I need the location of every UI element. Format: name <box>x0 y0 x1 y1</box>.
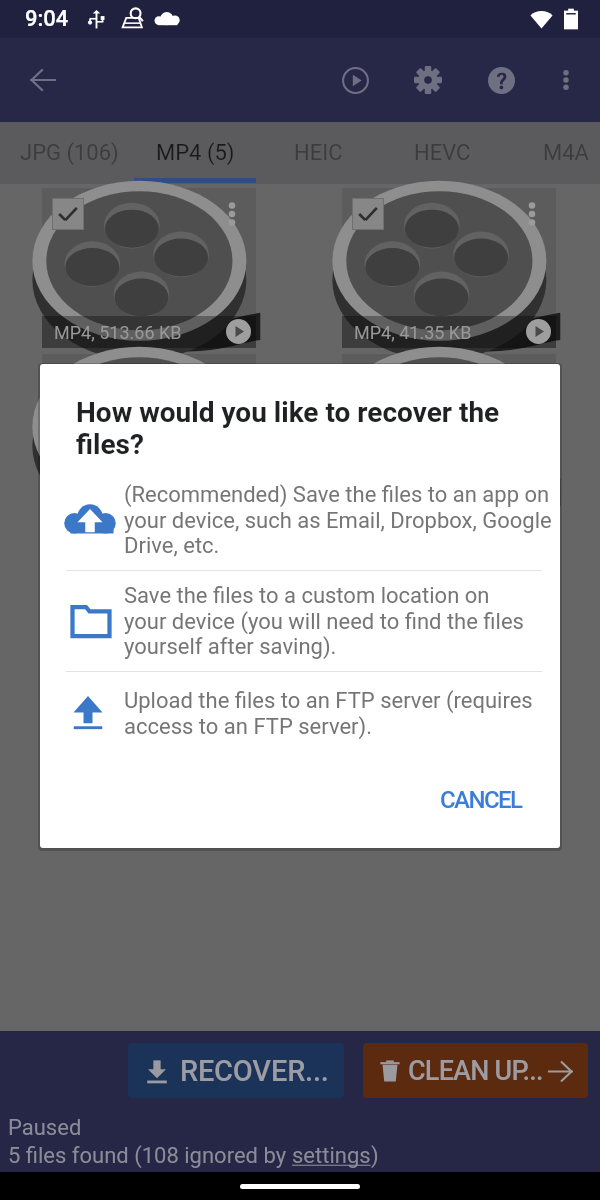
button[interactable]: MP4, 513.66 KB <box>42 188 256 348</box>
staticText: HEVC <box>414 140 471 166</box>
button[interactable]: MP4 (5) <box>134 122 256 184</box>
staticText: How would you like to recover the files? <box>76 396 500 461</box>
button[interactable]: More options <box>542 56 590 104</box>
button[interactable]: Save the files to a custom location on y… <box>40 571 560 671</box>
button[interactable]: CLEAN UP... <box>363 1043 588 1098</box>
staticText: Paused <box>8 1115 82 1141</box>
button[interactable]: Back <box>19 56 67 104</box>
button[interactable]: MP4, 3.42 KB <box>342 354 556 514</box>
staticText: MP4, 3.42 KB <box>354 488 462 509</box>
staticText: Upload the files to an FTP server (requi… <box>124 688 533 739</box>
staticText: RECOVER... <box>180 1054 329 1088</box>
staticText: MP4, 41.35 KB <box>354 322 472 343</box>
staticText: MP4 (5) <box>156 140 235 166</box>
staticText: ) <box>371 1143 379 1169</box>
button[interactable]: Settings <box>404 56 452 104</box>
button[interactable]: CANCEL <box>432 780 530 820</box>
button[interactable]: Upload the files to an FTP server (requi… <box>40 672 560 754</box>
staticText: MP4, 513.66 KB <box>54 322 182 343</box>
staticText: M4A <box>543 140 589 166</box>
staticText: JPG (106) <box>20 140 119 166</box>
button[interactable]: Play <box>331 56 379 104</box>
staticText: (Recommended) Save the files to an app o… <box>124 482 552 558</box>
staticText: settings <box>292 1143 371 1169</box>
button[interactable]: JPG (106) <box>14 122 124 184</box>
button[interactable]: Help <box>477 56 525 104</box>
button[interactable]: (Recommended) Save the files to an app o… <box>40 470 560 570</box>
button[interactable]: M4A <box>504 122 600 184</box>
staticText: CANCEL <box>440 786 522 814</box>
staticText: 5 files found (108 ignored by <box>8 1143 292 1169</box>
button[interactable]: RECOVER... <box>128 1043 344 1098</box>
button[interactable]: MP4, 41.35 KB <box>342 188 556 348</box>
staticText: 9:04 <box>25 6 69 32</box>
staticText: CLEAN UP... <box>408 1055 543 1087</box>
button[interactable]: MP4, 12.00 KB <box>42 354 256 514</box>
button[interactable]: HEVC <box>380 122 504 184</box>
button[interactable]: HEIC <box>256 122 380 184</box>
staticText: Save the files to a custom location on y… <box>124 583 524 659</box>
staticText: MP4, 12.00 KB <box>54 488 172 509</box>
staticText: HEIC <box>294 140 343 166</box>
